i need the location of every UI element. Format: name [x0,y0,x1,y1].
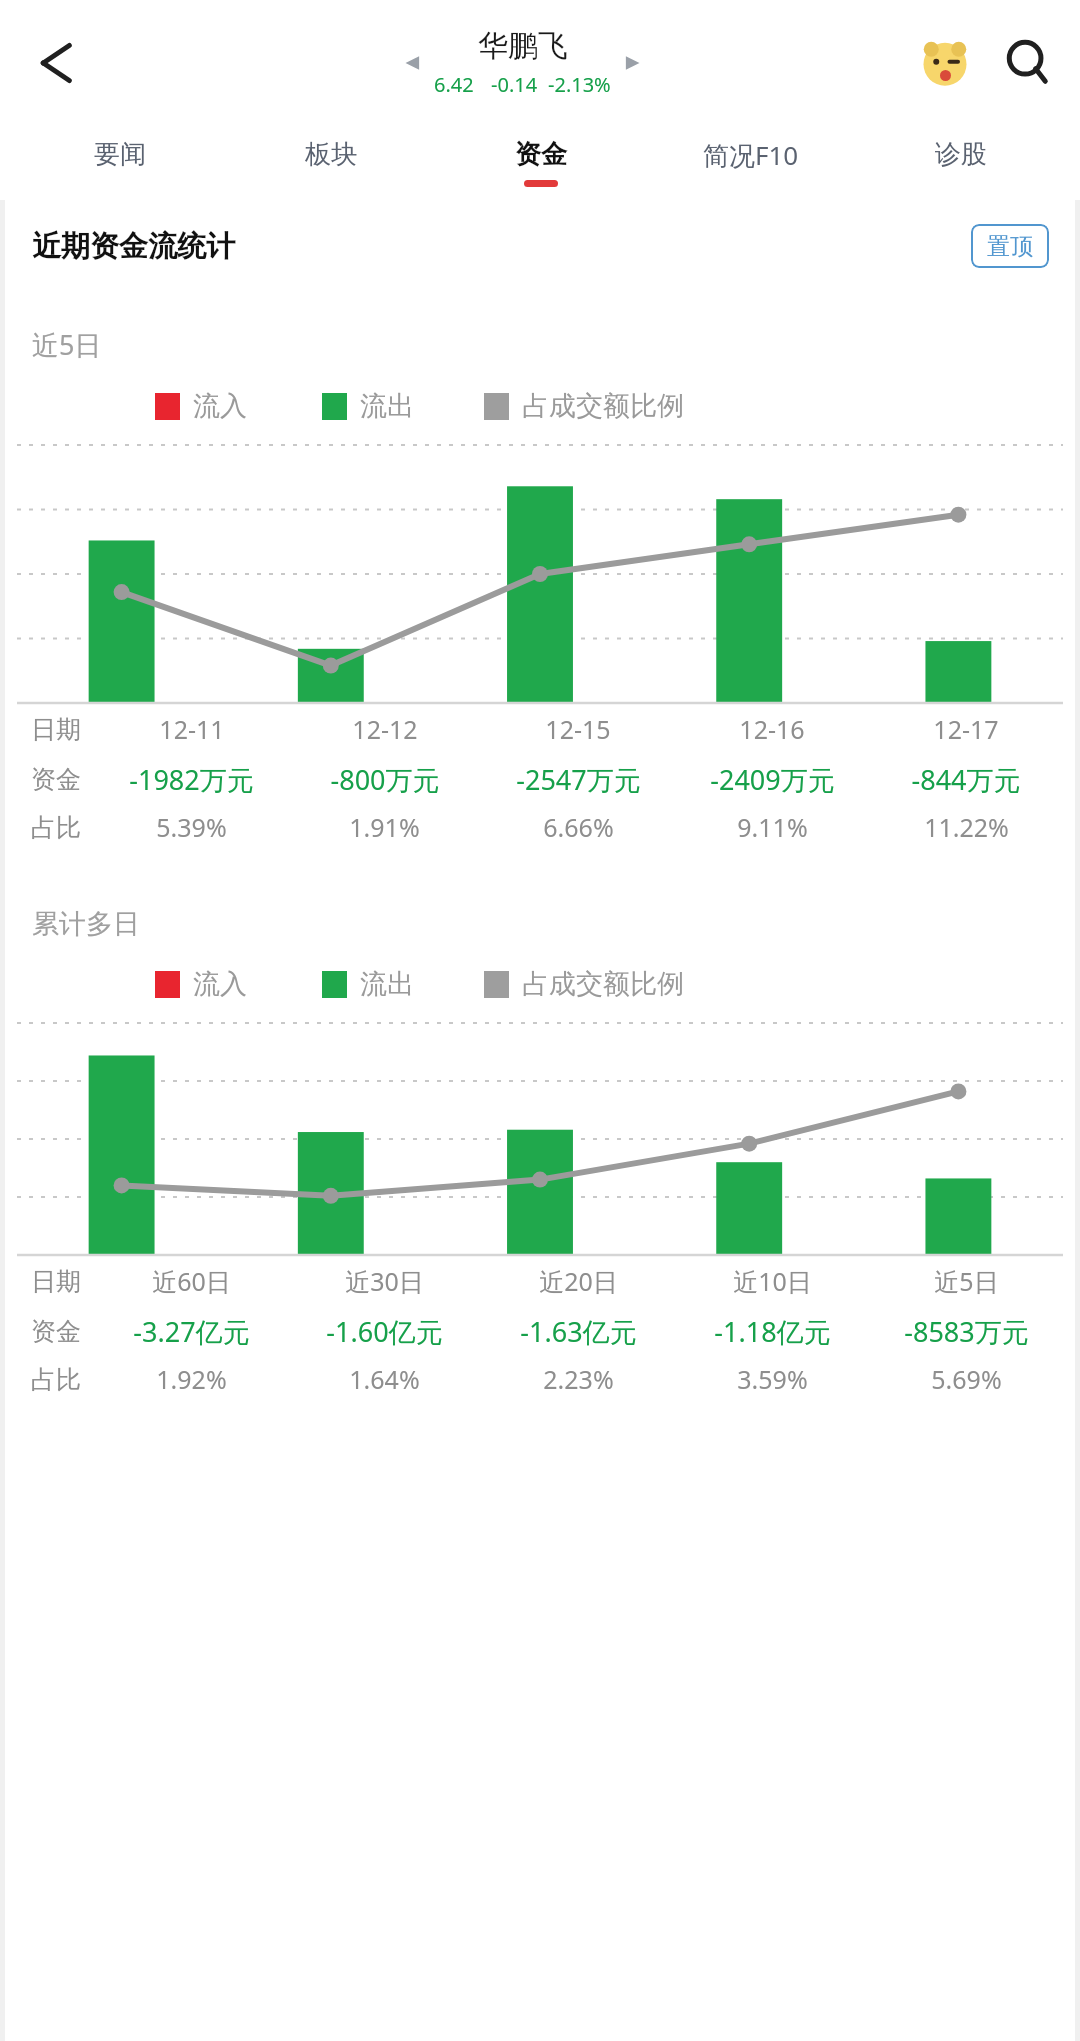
staticText: 3.59% [737,1362,808,1396]
staticText: 占成交额比例 [522,389,684,423]
staticText: 日期 [31,1266,81,1297]
staticText: 近60日 [152,1264,231,1298]
staticText: -1982万元 [129,761,254,798]
staticText: 占比 [31,812,81,843]
staticText: 2.23% [543,1362,614,1396]
button[interactable]: 资金 [436,125,646,200]
staticText: 华鹏飞 [478,27,568,65]
staticText: 占比 [31,1364,81,1395]
staticText: 1.91% [349,810,420,844]
staticText: 5.39% [156,810,227,844]
staticText: 近30日 [345,1264,424,1298]
staticText: 流出 [360,967,414,1001]
staticText: 近5日 [934,1264,999,1298]
button[interactable]: Avatar [916,34,974,92]
staticText: 板块 [305,138,357,171]
button[interactable]: 诊股 [856,125,1066,200]
staticText: -1.60亿元 [326,1313,443,1350]
button[interactable]: Back [14,28,84,98]
staticText: 近5日 [32,326,102,363]
staticText: 流出 [360,389,414,423]
staticText: -1.18亿元 [714,1313,831,1350]
staticText: 要闻 [94,138,146,171]
button[interactable]: 简况F10 [646,125,856,200]
staticText: 12-12 [352,712,418,746]
button[interactable]: Next stock [615,46,649,80]
staticText: 流入 [193,967,247,1001]
staticText: 6.42 [434,71,474,98]
staticText: 12-16 [739,712,805,746]
staticText: 5.69% [931,1362,1002,1396]
staticText: 12-15 [545,712,611,746]
button[interactable]: 板块 [225,125,436,200]
staticText: 资金 [515,138,567,171]
staticText: 近10日 [733,1264,812,1298]
button[interactable]: Previous stock [396,46,430,80]
staticText: -0.14 [491,71,538,98]
staticText: 6.66% [543,810,614,844]
staticText: 12-17 [933,712,999,746]
button[interactable]: Search [998,33,1058,93]
staticText: 12-11 [159,712,225,746]
staticText: 诊股 [935,138,987,171]
staticText: 置顶 [987,232,1033,261]
button[interactable]: 要闻 [14,125,225,200]
staticText: -844万元 [911,761,1021,798]
staticText: 1.92% [156,1362,227,1396]
staticText: -1.63亿元 [520,1313,637,1350]
staticText: 近期资金流统计 [32,228,235,265]
staticText: -8583万元 [904,1313,1029,1350]
staticText: 近20日 [539,1264,618,1298]
staticText: 9.11% [737,810,808,844]
staticText: 日期 [31,714,81,745]
staticText: 占成交额比例 [522,967,684,1001]
staticText: 流入 [193,389,247,423]
staticText: 累计多日 [32,907,140,941]
staticText: -3.27亿元 [133,1313,250,1350]
staticText: -2409万元 [710,761,835,798]
staticText: 11.22% [924,810,1009,844]
staticText: 资金 [31,1316,81,1347]
staticText: 资金 [31,764,81,795]
staticText: -800万元 [330,761,440,798]
button[interactable]: 置顶 [971,224,1049,268]
staticText: 简况F10 [703,137,799,173]
staticText: -2.13% [548,71,611,98]
staticText: 1.64% [349,1362,420,1396]
staticText: -2547万元 [516,761,641,798]
